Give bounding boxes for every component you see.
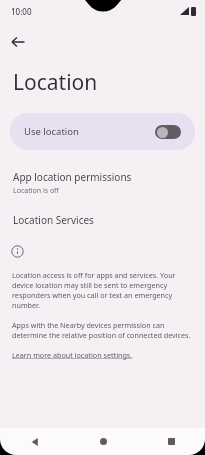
button[interactable]: Learn more about location settings. (12, 350, 133, 360)
button[interactable]: Back (0, 428, 69, 455)
staticText: Apps with the Nearby devices permission … (12, 320, 193, 340)
staticText: App location permissions (13, 170, 132, 184)
staticText: 10:00 (11, 6, 32, 17)
button[interactable]: Recent apps (137, 428, 205, 455)
button[interactable]: Use location (10, 113, 195, 150)
staticText: Location access is off for apps and serv… (12, 270, 193, 310)
staticText: Location Services (13, 213, 94, 227)
staticText: Location (13, 68, 98, 97)
button[interactable]: App location permissions (0, 168, 205, 198)
button[interactable]: Location Services (0, 211, 205, 229)
button[interactable]: Home (69, 428, 137, 455)
button[interactable]: Back (4, 28, 32, 56)
staticText: Learn more about location settings. (12, 350, 133, 360)
staticText: Use location (24, 125, 79, 138)
staticText: Location is off (13, 186, 59, 196)
